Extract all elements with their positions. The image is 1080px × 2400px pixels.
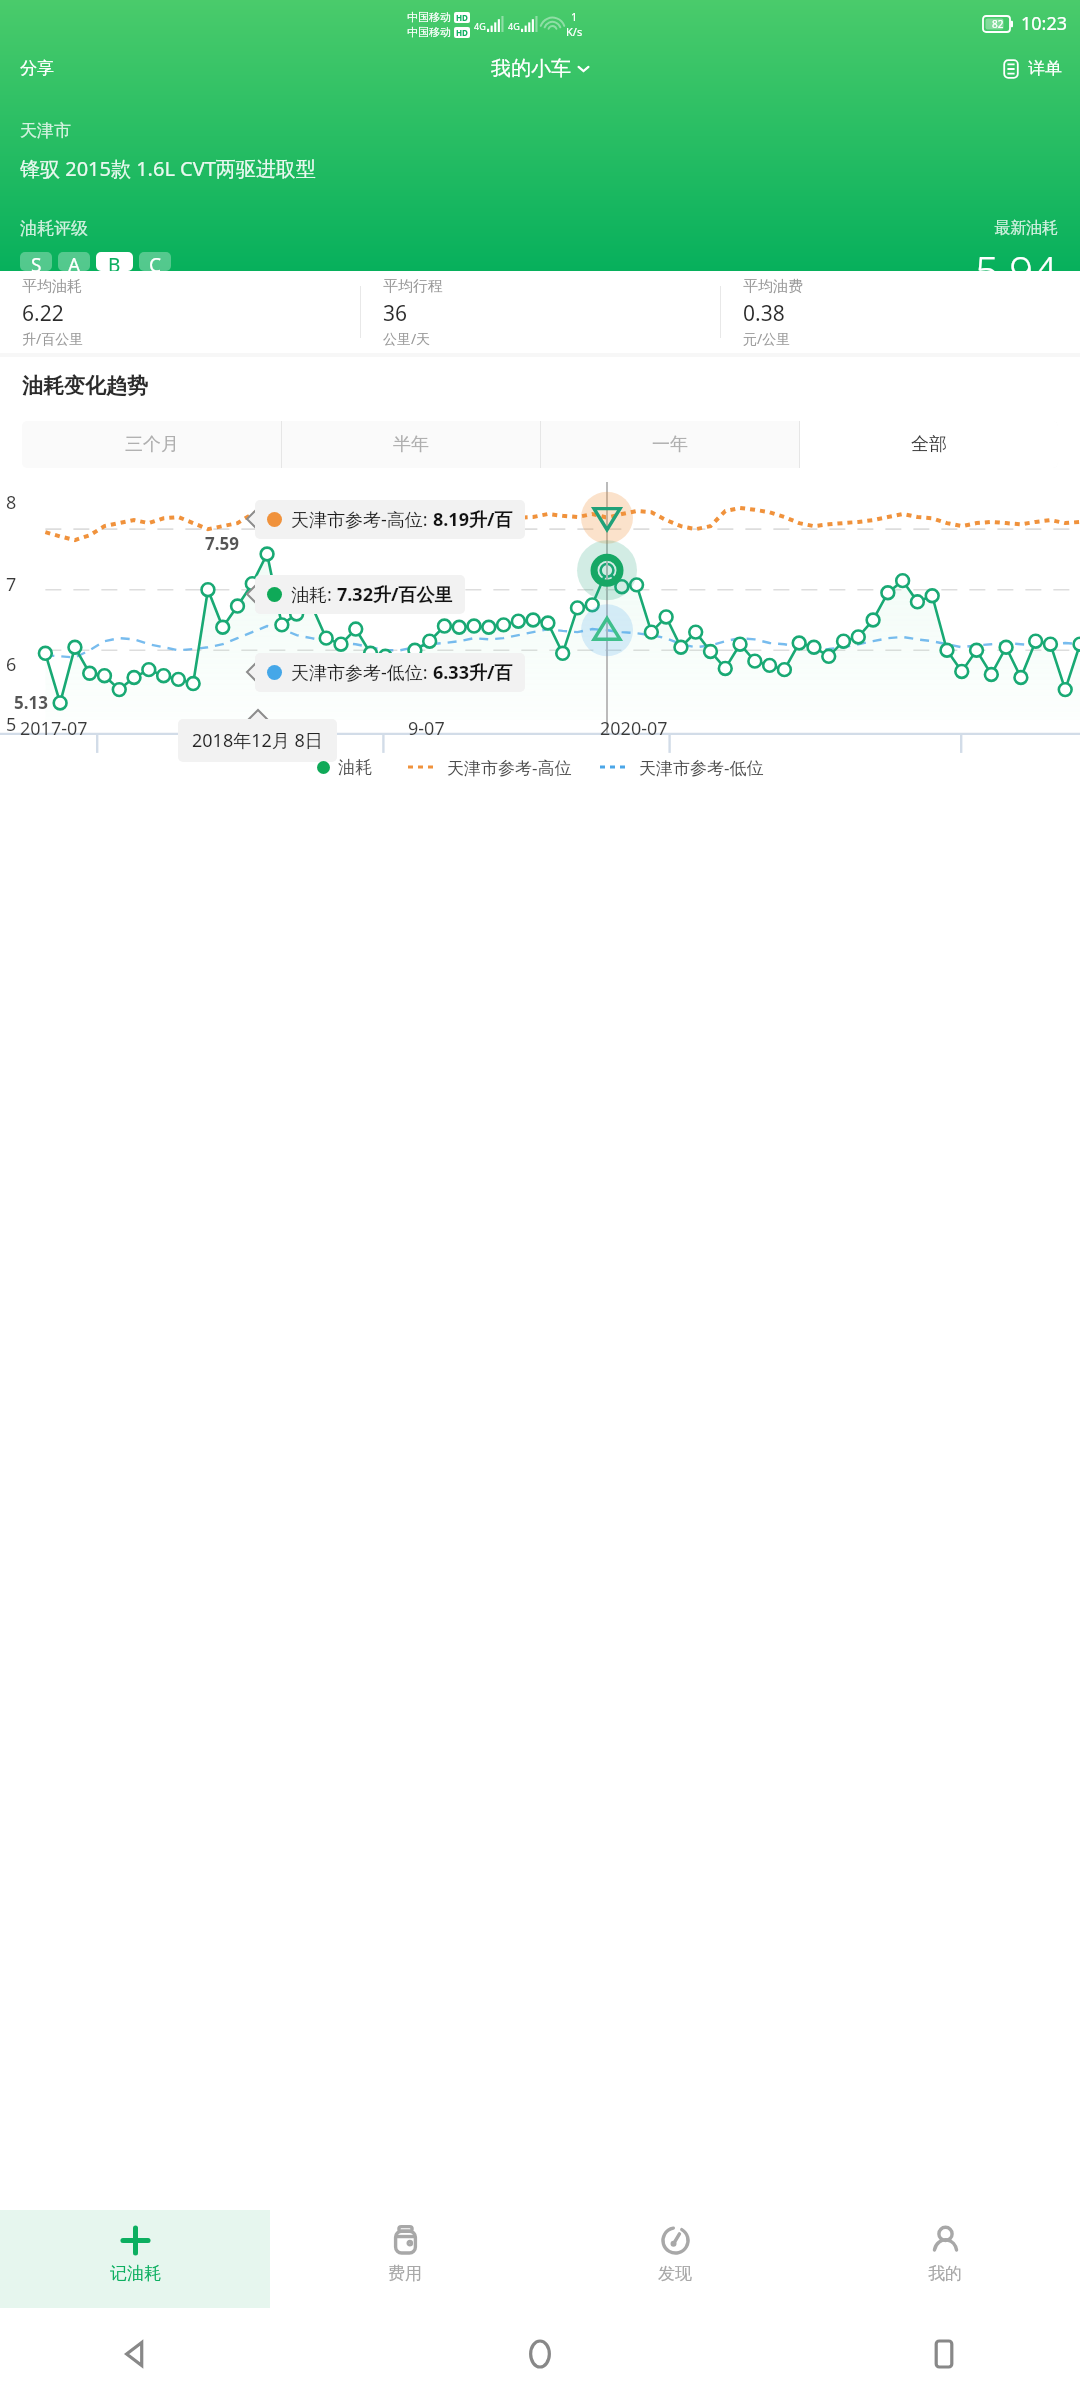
- staticText: 三个月: [125, 433, 179, 456]
- button[interactable]: C: [139, 252, 171, 271]
- staticText: 天津市参考-低位: [639, 756, 764, 779]
- button[interactable]: Back: [110, 2328, 162, 2380]
- staticText: 82: [992, 17, 1004, 31]
- staticText: 元/公里: [743, 329, 791, 348]
- staticText: 5: [6, 712, 17, 737]
- staticText: 平均油耗: [22, 277, 82, 296]
- staticText: 7: [6, 572, 17, 597]
- staticText: 我的小车: [491, 56, 571, 81]
- button[interactable]: 我的小车: [483, 53, 598, 84]
- staticText: 6.22: [22, 299, 64, 328]
- staticText: 升/百公里: [22, 329, 84, 348]
- staticText: HD: [456, 27, 468, 38]
- staticText: 5.94: [975, 242, 1058, 271]
- button[interactable]: 全部: [800, 421, 1058, 468]
- staticText: 平均油费: [743, 277, 803, 296]
- staticText: 6.33升/百: [433, 660, 513, 685]
- staticText: C: [149, 252, 162, 271]
- button[interactable]: 我的: [810, 2210, 1080, 2308]
- staticText: 2018-: [218, 716, 265, 741]
- staticText: 6: [6, 652, 17, 677]
- button[interactable]: B: [96, 252, 133, 271]
- button[interactable]: 平均油费: [721, 277, 1080, 348]
- staticText: HD: [456, 12, 468, 23]
- staticText: S: [31, 252, 42, 271]
- button[interactable]: 天津市参考-高位:: [255, 500, 525, 539]
- staticText: 天津市参考-低位:: [291, 660, 433, 685]
- staticText: 4G: [474, 20, 486, 32]
- button[interactable]: 平均行程: [361, 277, 720, 348]
- button[interactable]: 半年: [282, 421, 540, 468]
- button[interactable]: 一年: [541, 421, 799, 468]
- staticText: 一年: [652, 433, 688, 456]
- staticText: 7.32升/百公里: [337, 582, 453, 607]
- staticText: 油耗:: [291, 582, 337, 607]
- staticText: A: [68, 252, 81, 271]
- staticText: 0.38: [743, 299, 785, 328]
- staticText: 中国移动: [407, 10, 451, 24]
- button[interactable]: 详单: [995, 54, 1068, 83]
- button[interactable]: 记油耗: [0, 2210, 270, 2308]
- staticText: 天津市参考-高位: [447, 756, 572, 779]
- staticText: 平均行程: [383, 277, 443, 296]
- button[interactable]: Home: [514, 2328, 566, 2380]
- staticText: 半年: [393, 433, 429, 456]
- staticText: 1: [571, 9, 578, 24]
- staticText: 2018年12月 8日: [192, 728, 323, 753]
- staticText: 10:23: [1021, 11, 1068, 36]
- staticText: 油耗: [338, 757, 372, 778]
- staticText: 锋驭 2015款 1.6L CVT两驱进取型: [20, 155, 316, 182]
- staticText: 中国移动: [407, 25, 451, 39]
- staticText: 7.59: [205, 532, 239, 555]
- button[interactable]: 天津市参考-低位:: [255, 653, 525, 692]
- staticText: 2017-07: [20, 716, 88, 741]
- staticText: 天津市: [20, 120, 71, 141]
- button[interactable]: 平均油耗: [0, 277, 360, 348]
- staticText: 费用: [388, 2263, 422, 2284]
- staticText: 最新油耗: [994, 218, 1058, 238]
- staticText: 天津市参考-高位:: [291, 507, 433, 532]
- button[interactable]: 2018年12月 8日: [178, 719, 337, 762]
- staticText: 8.19升/百: [433, 507, 513, 532]
- staticText: 发现: [658, 2263, 692, 2284]
- staticText: 公里/天: [383, 329, 431, 348]
- button[interactable]: 分享: [10, 54, 64, 83]
- staticText: 36: [383, 299, 408, 328]
- staticText: 5.13: [14, 691, 48, 714]
- staticText: 详单: [1028, 58, 1062, 79]
- staticText: 我的: [928, 2263, 962, 2284]
- staticText: 全部: [911, 433, 947, 456]
- button[interactable]: A: [58, 252, 90, 271]
- staticText: K/s: [566, 24, 583, 39]
- button[interactable]: 费用: [270, 2210, 540, 2308]
- button[interactable]: 油耗:: [255, 575, 465, 614]
- staticText: 2020-07: [600, 716, 668, 741]
- staticText: 4G: [508, 20, 520, 32]
- staticText: 油耗评级: [20, 218, 88, 239]
- button[interactable]: 发现: [540, 2210, 810, 2308]
- staticText: 8: [6, 490, 17, 515]
- button[interactable]: S: [20, 252, 52, 271]
- staticText: 分享: [20, 58, 54, 79]
- staticText: 9-07: [408, 716, 445, 741]
- button[interactable]: Recent apps: [918, 2328, 970, 2380]
- staticText: 油耗变化趋势: [22, 373, 148, 399]
- staticText: B: [108, 252, 121, 271]
- button[interactable]: 三个月: [22, 421, 281, 468]
- staticText: 记油耗: [110, 2263, 161, 2284]
